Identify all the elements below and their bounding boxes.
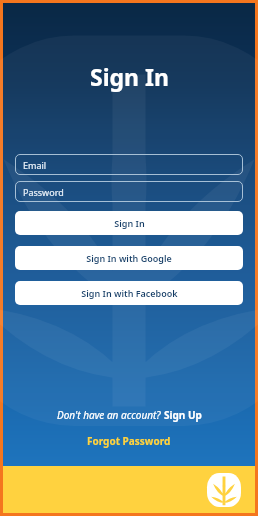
staticText: Forgot Password: [87, 434, 171, 448]
staticText: Password: [23, 186, 64, 198]
staticText: Sign In with Facebook: [81, 287, 178, 299]
button[interactable]: Forgot Password: [81, 432, 177, 450]
staticText: Sign In with Google: [86, 252, 172, 264]
button[interactable]: Don't have an account?: [53, 406, 206, 424]
staticText: Sign In: [90, 61, 169, 92]
staticText: Sign Up: [164, 408, 202, 422]
button[interactable]: Password: [15, 181, 243, 202]
button[interactable]: Sign In: [15, 211, 243, 235]
button[interactable]: Email: [15, 154, 243, 175]
button[interactable]: Sign In with Google: [15, 246, 243, 270]
staticText: Don't have an account?: [57, 408, 164, 422]
staticText: Email: [23, 159, 47, 171]
staticText: Sign In: [114, 217, 145, 229]
other: Brand logo: [207, 473, 241, 507]
button[interactable]: Sign In with Facebook: [15, 281, 243, 305]
